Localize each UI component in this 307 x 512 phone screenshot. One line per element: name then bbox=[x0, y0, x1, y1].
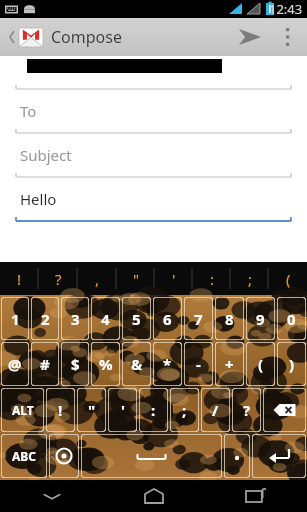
button[interactable]: 8 bbox=[215, 297, 244, 340]
button[interactable]: : bbox=[139, 388, 168, 432]
button[interactable]: , bbox=[78, 262, 117, 295]
button[interactable]: & bbox=[122, 342, 151, 386]
staticText: Subject bbox=[20, 145, 72, 165]
staticText: ' bbox=[121, 400, 125, 420]
button[interactable]: # bbox=[31, 342, 59, 386]
button[interactable]: 5 bbox=[122, 297, 151, 340]
button[interactable]: * bbox=[153, 342, 182, 386]
button[interactable]: " bbox=[117, 262, 155, 295]
button[interactable]: To bbox=[0, 91, 307, 135]
button[interactable]: More options bbox=[273, 18, 303, 56]
button[interactable]: ; bbox=[170, 388, 199, 432]
button[interactable]: Compose bbox=[4, 22, 126, 52]
button[interactable]: : bbox=[193, 262, 231, 295]
button[interactable]: + bbox=[215, 342, 244, 386]
staticText: Hello bbox=[20, 189, 57, 209]
button[interactable]: 9 bbox=[246, 297, 275, 340]
button[interactable]: Delete bbox=[263, 388, 306, 432]
button[interactable]: ( bbox=[269, 262, 307, 295]
staticText: 3 bbox=[71, 309, 80, 329]
staticText: ABC bbox=[12, 448, 36, 464]
button[interactable]: Settings bbox=[49, 434, 79, 478]
staticText: 1 bbox=[11, 309, 20, 329]
staticText: Compose bbox=[51, 26, 122, 48]
staticText: # bbox=[40, 354, 50, 374]
button[interactable]: Home bbox=[103, 480, 205, 512]
staticText: ' bbox=[172, 269, 176, 289]
button[interactable]: ! bbox=[0, 262, 39, 295]
staticText: : bbox=[151, 400, 156, 420]
button[interactable]: ? bbox=[39, 262, 78, 295]
staticText: , bbox=[95, 269, 100, 289]
button[interactable]: $ bbox=[61, 342, 89, 386]
staticText: : bbox=[210, 269, 215, 289]
button[interactable]: / bbox=[201, 388, 230, 432]
button[interactable]: Recent apps bbox=[205, 480, 307, 512]
staticText: 0 bbox=[287, 309, 296, 329]
button[interactable]: " bbox=[77, 388, 106, 432]
staticText: 12:43 bbox=[269, 0, 303, 18]
staticText: 7 bbox=[194, 309, 203, 329]
button[interactable]: 7 bbox=[184, 297, 213, 340]
button[interactable]: 0 bbox=[277, 297, 306, 340]
button[interactable]: 4 bbox=[91, 297, 120, 340]
button[interactable]: @ bbox=[1, 342, 29, 386]
button[interactable]: Enter bbox=[252, 434, 306, 478]
button[interactable]: ALT bbox=[1, 388, 44, 432]
button[interactable]: Hello bbox=[0, 179, 307, 223]
staticText: 5 bbox=[132, 309, 141, 329]
staticText: ; bbox=[182, 400, 187, 420]
staticText: ( bbox=[258, 354, 264, 374]
button[interactable]: Send bbox=[227, 18, 273, 56]
button[interactable]: ABC bbox=[1, 434, 47, 478]
staticText: ALT bbox=[12, 402, 34, 418]
button[interactable]: ' bbox=[155, 262, 193, 295]
button[interactable]: 6 bbox=[153, 297, 182, 340]
staticText: + bbox=[225, 354, 234, 374]
staticText: ! bbox=[17, 269, 22, 289]
staticText: To bbox=[20, 101, 37, 121]
staticText: ? bbox=[243, 400, 251, 420]
staticText: " bbox=[133, 269, 140, 289]
button[interactable]: Period bbox=[224, 434, 250, 478]
button[interactable]: % bbox=[91, 342, 120, 386]
staticText: 2 bbox=[41, 309, 50, 329]
staticText: ( bbox=[286, 269, 291, 289]
button[interactable]: 1 bbox=[1, 297, 29, 340]
staticText: 4 bbox=[101, 309, 110, 329]
staticText: ) bbox=[289, 354, 295, 374]
button[interactable]: Subject bbox=[0, 135, 307, 179]
staticText: ! bbox=[58, 400, 63, 420]
button[interactable]: ? bbox=[232, 388, 261, 432]
button[interactable]: ) bbox=[277, 342, 306, 386]
staticText: - bbox=[196, 354, 201, 374]
button[interactable]: ! bbox=[46, 388, 75, 432]
button[interactable]: ; bbox=[231, 262, 269, 295]
button[interactable]: Space bbox=[81, 434, 222, 478]
staticText: 8 bbox=[225, 309, 234, 329]
staticText: " bbox=[88, 400, 96, 420]
staticText: % bbox=[99, 354, 113, 374]
button[interactable]: 2 bbox=[31, 297, 59, 340]
staticText: & bbox=[131, 354, 143, 374]
staticText: 9 bbox=[256, 309, 265, 329]
button[interactable] bbox=[0, 56, 307, 91]
button[interactable]: ' bbox=[108, 388, 137, 432]
staticText: ; bbox=[248, 269, 253, 289]
button[interactable]: - bbox=[184, 342, 213, 386]
button[interactable]: ( bbox=[246, 342, 275, 386]
staticText: * bbox=[163, 354, 172, 374]
button[interactable]: Hide keyboard bbox=[0, 480, 103, 512]
staticText: @ bbox=[8, 354, 22, 374]
button[interactable]: 3 bbox=[61, 297, 89, 340]
staticText: ? bbox=[55, 269, 62, 289]
staticText: 6 bbox=[163, 309, 172, 329]
staticText: / bbox=[212, 400, 219, 420]
staticText: $ bbox=[71, 354, 80, 374]
